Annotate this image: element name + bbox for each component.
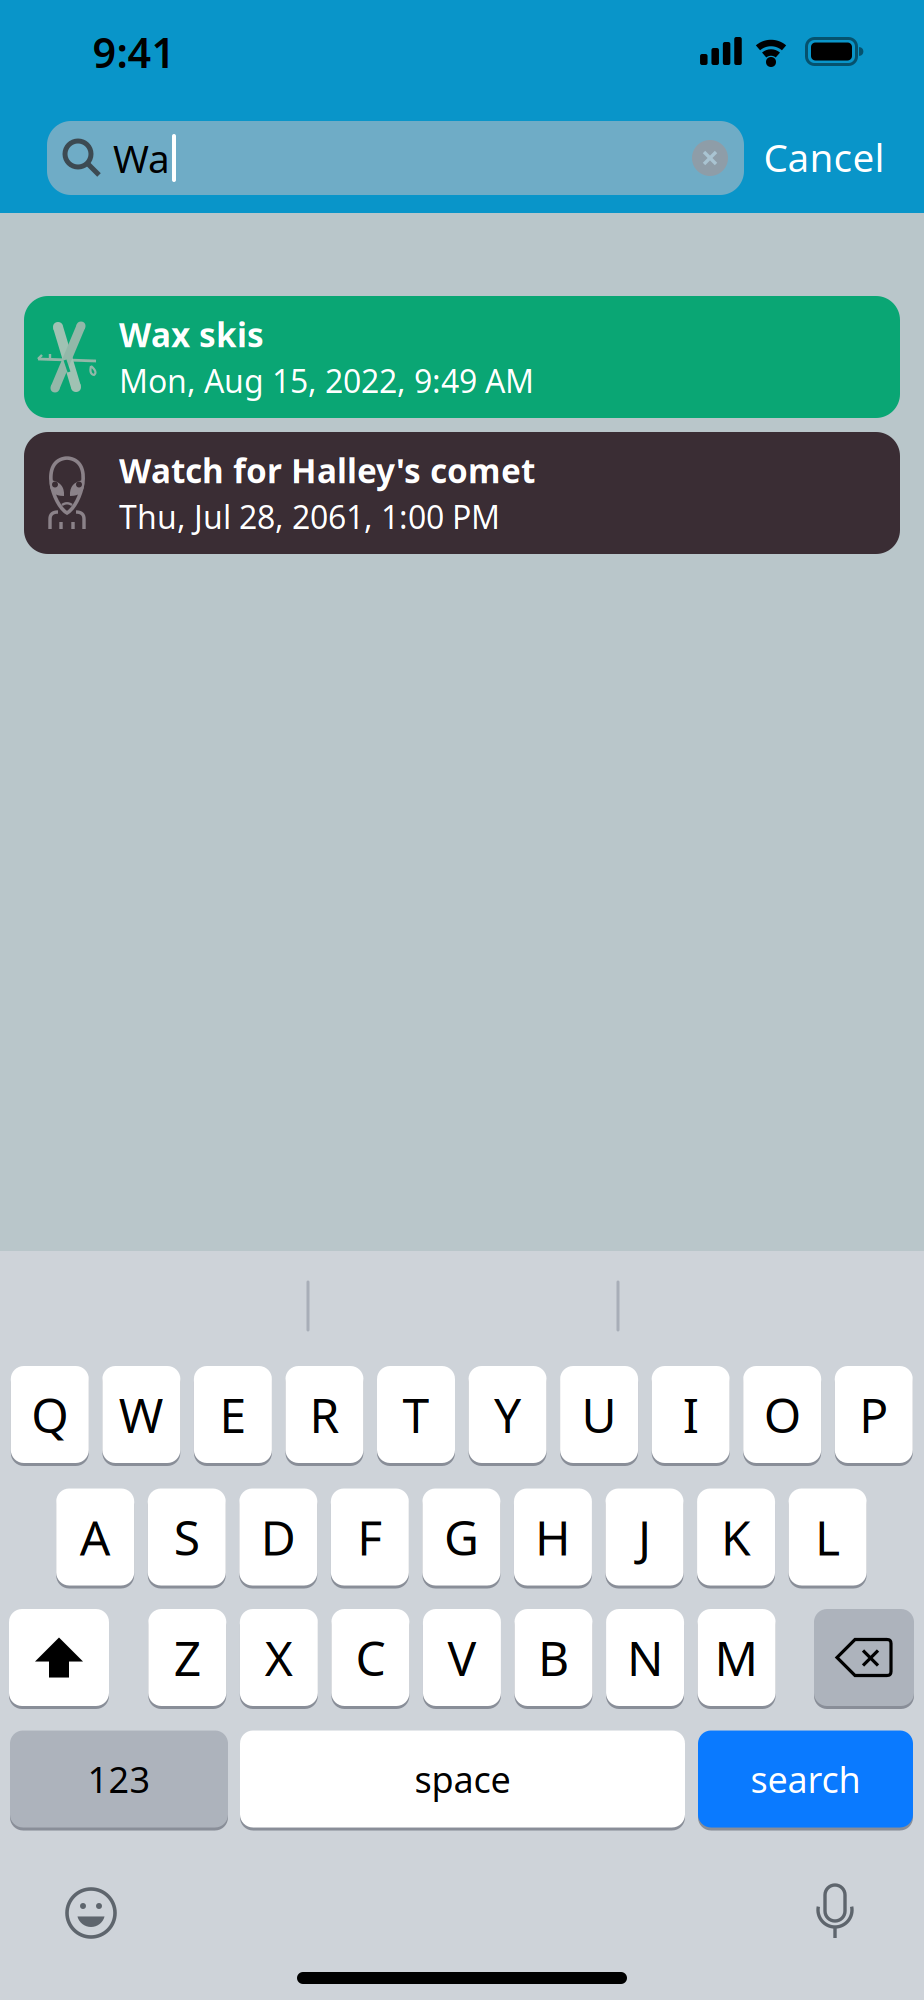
button[interactable]: Delete — [814, 1609, 914, 1706]
button[interactable]: Q — [11, 1366, 89, 1463]
staticText: Wax skis — [119, 312, 264, 356]
staticText: I — [683, 1383, 699, 1446]
staticText: G — [444, 1505, 479, 1569]
button[interactable]: E — [194, 1366, 272, 1463]
button[interactable]: Clear text — [692, 140, 728, 176]
staticText: T — [402, 1383, 429, 1446]
staticText: V — [447, 1626, 476, 1689]
staticText: search — [750, 1755, 860, 1803]
button[interactable]: C — [331, 1609, 409, 1706]
staticText: K — [721, 1505, 751, 1569]
staticText: Watch for Halley's comet — [119, 448, 535, 492]
staticText: X — [265, 1626, 293, 1689]
button[interactable]: S — [148, 1488, 226, 1585]
staticText: N — [627, 1626, 663, 1689]
staticText: E — [219, 1383, 246, 1446]
button[interactable]: Z — [148, 1609, 226, 1706]
staticText: space — [414, 1755, 510, 1803]
button[interactable]: L — [789, 1488, 867, 1585]
staticText: Wa — [113, 132, 170, 184]
button[interactable]: D — [239, 1488, 317, 1585]
staticText: Y — [494, 1383, 521, 1446]
staticText: 9:41 — [92, 25, 175, 79]
button[interactable]: W — [102, 1366, 180, 1463]
staticText: Z — [174, 1626, 201, 1689]
staticText: C — [355, 1626, 385, 1689]
staticText: Mon, Aug 15, 2022, 9:49 AM — [119, 359, 534, 402]
button[interactable]: Emoji — [64, 1886, 118, 1940]
button[interactable]: Search — [47, 121, 744, 195]
button[interactable]: Watch for Halley's comet — [24, 432, 900, 554]
button[interactable]: I — [652, 1366, 730, 1463]
staticText: L — [815, 1505, 840, 1569]
staticText: F — [357, 1505, 382, 1569]
staticText: M — [715, 1626, 759, 1689]
staticText: U — [582, 1383, 617, 1446]
staticText: R — [309, 1383, 339, 1446]
button[interactable]: Wax skis — [24, 296, 900, 418]
staticText: H — [535, 1505, 571, 1569]
button[interactable]: A — [56, 1488, 134, 1585]
button[interactable]: B — [514, 1609, 592, 1706]
button[interactable]: M — [698, 1609, 776, 1706]
button[interactable]: X — [240, 1609, 318, 1706]
button[interactable]: R — [285, 1366, 363, 1463]
staticText: S — [174, 1505, 200, 1569]
button[interactable]: 123 — [10, 1730, 228, 1827]
button[interactable]: K — [697, 1488, 775, 1585]
staticText: Q — [31, 1383, 68, 1446]
button[interactable]: J — [605, 1488, 683, 1585]
staticText: 123 — [87, 1755, 150, 1803]
button[interactable]: Cancel — [763, 131, 884, 183]
button[interactable]: F — [331, 1488, 409, 1585]
button[interactable]: U — [560, 1366, 638, 1463]
button[interactable]: O — [743, 1366, 821, 1463]
button[interactable]: Y — [469, 1366, 547, 1463]
staticText: J — [638, 1505, 651, 1569]
staticText: Cancel — [763, 131, 884, 183]
staticText: P — [859, 1383, 888, 1446]
staticText: Thu, Jul 28, 2061, 1:00 PM — [119, 495, 500, 538]
staticText: B — [538, 1626, 569, 1689]
button[interactable]: N — [606, 1609, 684, 1706]
button[interactable]: Dictation — [813, 1883, 857, 1939]
staticText: D — [261, 1505, 296, 1569]
button[interactable]: Shift — [9, 1609, 109, 1706]
button[interactable]: T — [377, 1366, 455, 1463]
button[interactable]: H — [514, 1488, 592, 1585]
button[interactable]: V — [423, 1609, 501, 1706]
staticText: W — [119, 1383, 164, 1446]
button[interactable]: search — [698, 1730, 913, 1827]
button[interactable]: G — [422, 1488, 500, 1585]
staticText: O — [764, 1383, 801, 1446]
staticText: A — [80, 1505, 111, 1569]
button[interactable]: space — [240, 1730, 685, 1827]
button[interactable]: P — [835, 1366, 913, 1463]
